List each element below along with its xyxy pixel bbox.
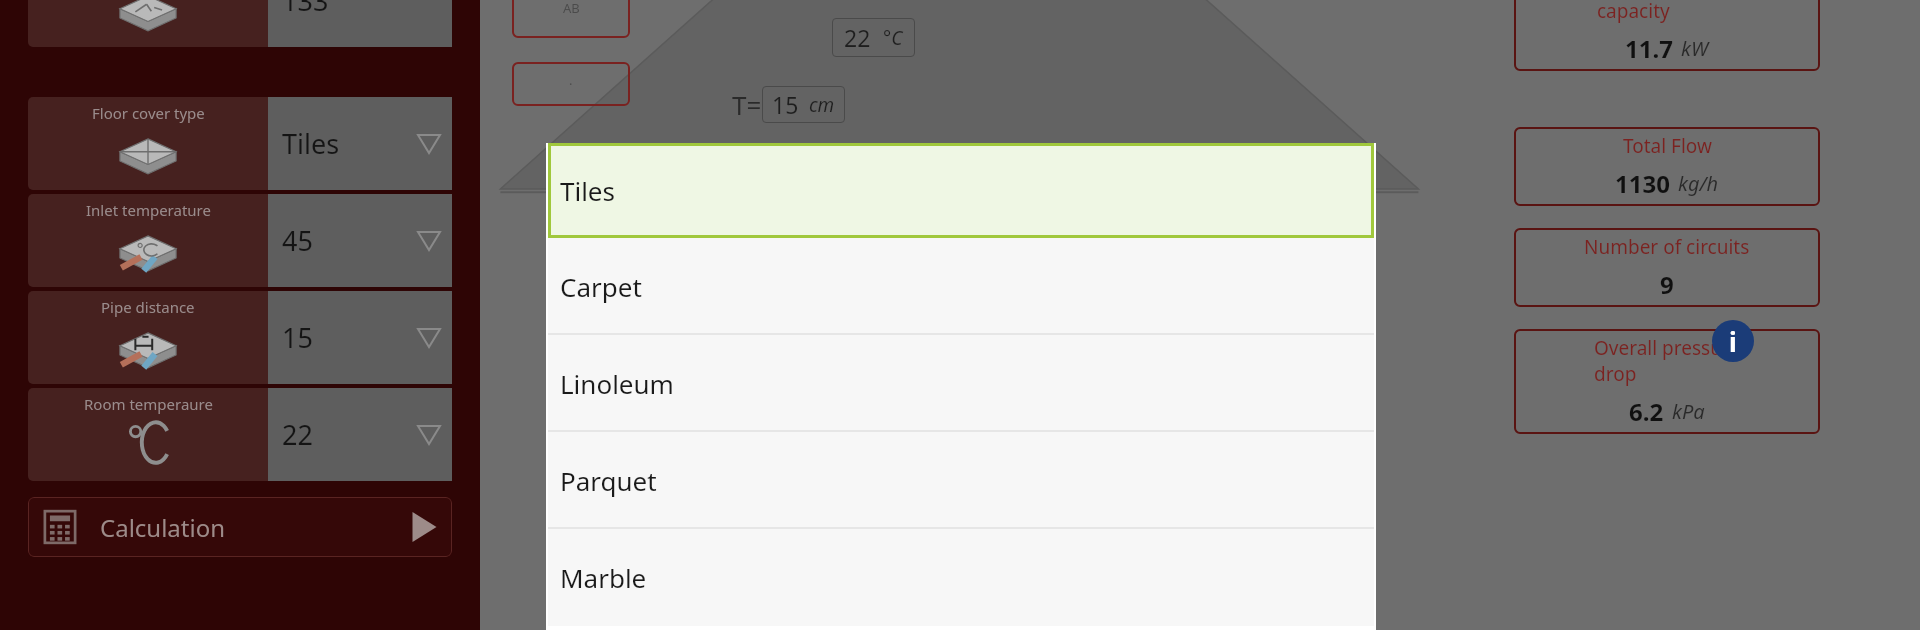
button[interactable]: Marble — [548, 529, 1374, 626]
staticText: Room temperaure — [84, 394, 213, 414]
staticText: Number of circuits — [1584, 234, 1750, 260]
staticText: Tiles — [560, 173, 615, 208]
staticText: Linoleum — [560, 366, 674, 401]
staticText: 1130 — [1615, 167, 1670, 200]
staticText: Floor cover type — [92, 103, 205, 123]
button[interactable]: Tiles — [548, 143, 1374, 238]
staticText: cm — [809, 92, 835, 118]
staticText: Total Flow — [1623, 133, 1712, 159]
staticText: Parquet — [560, 463, 657, 498]
button[interactable]: Parquet — [548, 432, 1374, 529]
staticText: °C — [883, 25, 903, 51]
staticText: 22 — [282, 416, 313, 453]
button[interactable]: Carpet — [548, 238, 1374, 335]
staticText: Pipe distance — [101, 297, 195, 317]
staticText: kW — [1681, 35, 1709, 62]
button[interactable]: Linoleum — [548, 335, 1374, 432]
staticText: Marble — [560, 560, 647, 595]
staticText: Overall pressure drop — [1594, 335, 1741, 387]
staticText: 11.7 — [1625, 32, 1673, 65]
button[interactable]: Overall pressure drop — [1514, 329, 1820, 434]
staticText: T= — [732, 87, 762, 122]
staticText: Specific heating capacity — [1597, 0, 1738, 24]
staticText: 133 — [282, 0, 329, 19]
staticText: Carpet — [560, 269, 642, 304]
button[interactable]: · — [512, 62, 630, 106]
staticText: ΑΒ — [563, 0, 580, 17]
staticText: Calculation — [100, 511, 226, 544]
button[interactable]: Total Flow — [1514, 127, 1820, 206]
button[interactable]: Information — [1712, 320, 1754, 362]
staticText: · — [569, 75, 573, 93]
staticText: 15 — [282, 319, 313, 356]
staticText: i — [1729, 324, 1737, 359]
staticText: 15 — [772, 89, 799, 120]
staticText: Inlet temperature — [86, 200, 211, 220]
button[interactable]: Calculation — [28, 497, 452, 557]
staticText: 9 — [1660, 268, 1674, 301]
button[interactable]: 15 — [762, 86, 845, 123]
staticText: 22 — [844, 22, 871, 53]
button[interactable]: ΑΒ — [512, 0, 630, 38]
staticText: Tiles — [282, 125, 340, 162]
button[interactable]: Specific heating capacity — [1514, 0, 1820, 71]
button[interactable]: Number of circuits — [1514, 228, 1820, 307]
staticText: 6.2 — [1629, 395, 1664, 428]
staticText: kg/h — [1678, 170, 1719, 197]
staticText: 45 — [282, 222, 313, 259]
button[interactable]: 22 — [832, 18, 915, 57]
staticText: kPa — [1672, 398, 1705, 425]
